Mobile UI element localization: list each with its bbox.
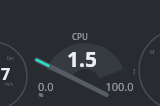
button[interactable]: CPU usage gauge <box>0 0 160 106</box>
